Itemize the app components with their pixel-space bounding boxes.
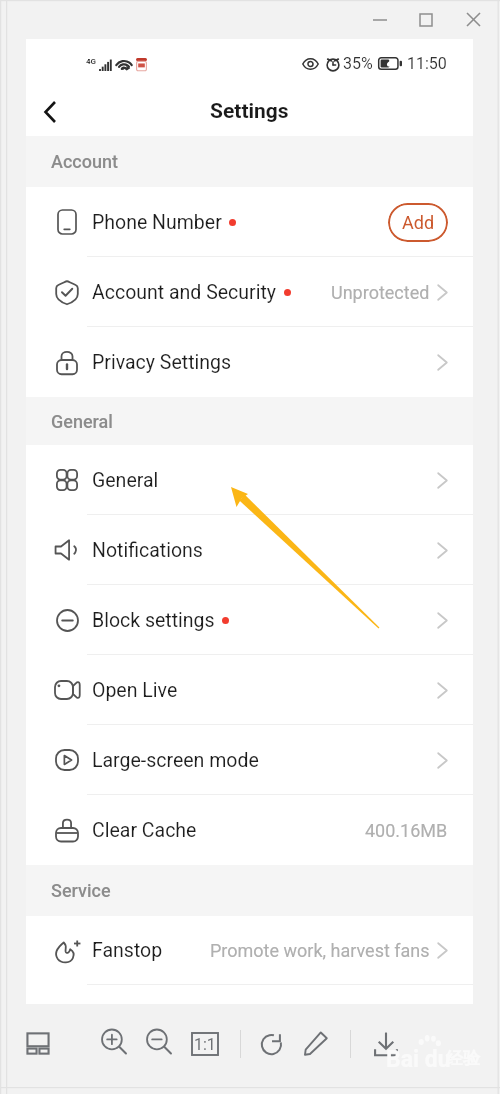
button[interactable]: Notifications [26,515,473,585]
button[interactable]: Zoom in [94,1022,134,1062]
button[interactable]: Close [449,0,497,39]
button[interactable]: Back [28,90,72,134]
button[interactable]: Minimize [357,0,403,39]
button[interactable]: Actual size [191,1032,219,1056]
staticText: Add [402,212,435,233]
button[interactable]: Open Live [26,655,473,725]
button[interactable]: Block settings [26,585,473,655]
button[interactable]: Maximize [403,0,449,39]
staticText: Notifications [92,539,203,562]
button[interactable]: Large-screen mode [26,725,473,795]
staticText: General [51,411,113,432]
button[interactable]: Fanstop [26,916,473,985]
staticText: Account and Security [92,281,277,304]
button[interactable]: Rotate [253,1023,293,1063]
staticText: Large-screen mode [92,749,259,772]
staticText: Promote work, harvest fans [210,940,430,961]
button[interactable]: Privacy Settings [26,327,473,397]
staticText: Privacy Settings [92,351,232,374]
staticText: Open Live [92,679,178,702]
button[interactable]: Zoom out [139,1022,179,1062]
button[interactable]: General [26,445,473,515]
button[interactable]: Download [366,1024,406,1064]
staticText: 4G [86,57,97,66]
staticText: 经验 [446,1048,480,1069]
staticText: Bai du [386,1046,451,1073]
staticText: Block settings [92,609,215,632]
staticText: Service [51,880,111,901]
button[interactable]: Fit to window [18,1023,58,1063]
staticText: Account [51,151,118,172]
button[interactable]: Phone Number [26,187,473,257]
button[interactable]: Edit [296,1023,336,1063]
staticText: 11:50 [407,54,447,73]
staticText: Phone Number [92,211,222,234]
staticText: Fanstop [92,939,163,962]
button[interactable]: Account and Security [26,257,473,327]
staticText: Settings [210,99,289,124]
button[interactable]: Clear Cache [26,795,473,865]
staticText: Clear Cache [92,819,197,842]
staticText: 35% [343,54,373,73]
staticText: 400.16MB [365,820,448,841]
staticText: General [92,469,159,492]
staticText: Unprotected [331,282,430,303]
button[interactable]: Add [388,203,448,242]
staticText: 1:1 [194,1035,216,1054]
